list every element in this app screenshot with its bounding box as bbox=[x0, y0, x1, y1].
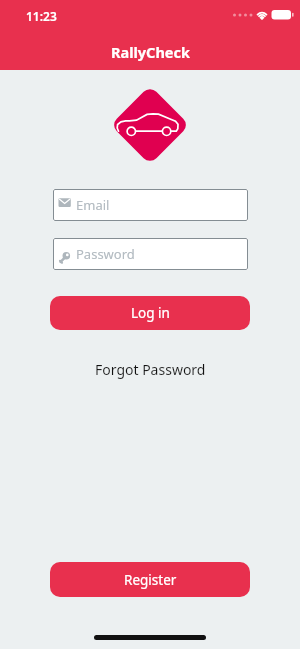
staticText: Email bbox=[76, 196, 110, 214]
button[interactable]: Forgot Password bbox=[0, 360, 300, 379]
staticText: RallyCheck bbox=[111, 42, 190, 62]
staticText: Register bbox=[124, 571, 177, 589]
staticText: Forgot Password bbox=[95, 360, 206, 379]
button[interactable]: Register bbox=[50, 562, 250, 597]
staticText: Log in bbox=[131, 304, 170, 322]
button[interactable]: Password bbox=[53, 238, 248, 270]
staticText: Password bbox=[76, 245, 135, 263]
button[interactable]: Email bbox=[53, 189, 248, 221]
button[interactable]: Log in bbox=[50, 296, 250, 330]
staticText: 11:23 bbox=[26, 8, 57, 24]
